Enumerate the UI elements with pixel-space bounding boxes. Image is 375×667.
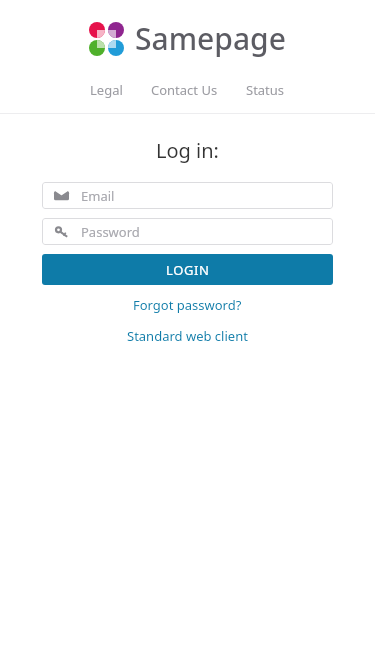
staticText: Status bbox=[246, 81, 285, 99]
button[interactable]: Legal bbox=[76, 76, 137, 104]
staticText: Contact Us bbox=[151, 81, 218, 99]
staticText: Forgot password? bbox=[133, 296, 242, 314]
button[interactable]: Contact Us bbox=[137, 76, 232, 104]
staticText: Log in: bbox=[0, 137, 375, 164]
staticText: Standard web client bbox=[127, 327, 248, 345]
staticText: LOGIN bbox=[166, 261, 210, 279]
staticText: Password bbox=[81, 223, 140, 241]
staticText: Email bbox=[81, 187, 115, 205]
staticText: Samepage bbox=[135, 18, 286, 59]
button[interactable]: LOGIN bbox=[42, 254, 333, 285]
button[interactable]: Password bbox=[42, 218, 333, 245]
button[interactable]: Standard web client bbox=[119, 325, 256, 347]
button[interactable]: Email bbox=[42, 182, 333, 209]
staticText: Legal bbox=[90, 81, 123, 99]
button[interactable]: Status bbox=[232, 76, 299, 104]
button[interactable]: Forgot password? bbox=[125, 294, 250, 316]
